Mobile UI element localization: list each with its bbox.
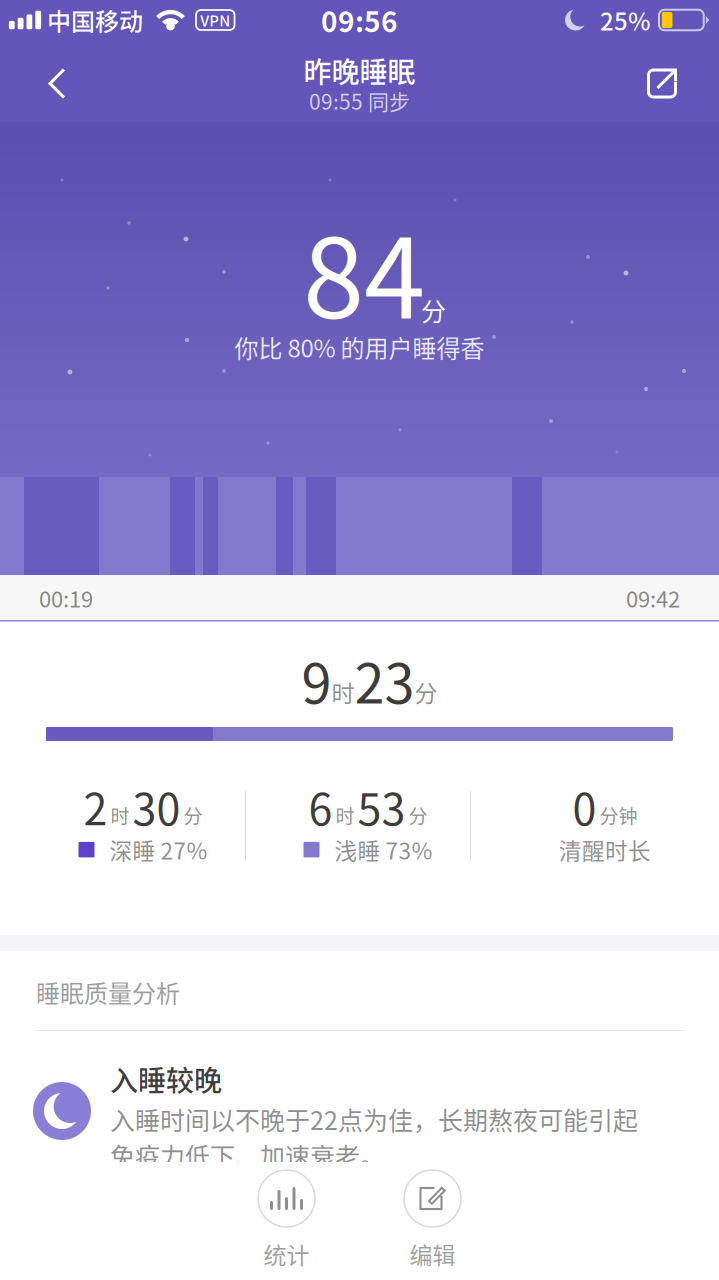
staticText: 时 — [331, 675, 354, 709]
staticText: 时 — [110, 802, 129, 829]
staticText: 分钟 — [599, 802, 637, 829]
button[interactable]: Back — [23, 51, 91, 115]
staticText: 9 — [301, 641, 331, 719]
staticText: 时 — [335, 802, 354, 829]
staticText: 分 — [421, 292, 446, 328]
staticText: 00:19 — [39, 582, 93, 614]
staticText: 6 — [308, 775, 332, 838]
staticText: 2 — [83, 775, 107, 838]
staticText: 入睡时间以不晚于22点为佳，长期熬夜可能引起免疫力低下、加速衰老。 — [110, 1101, 638, 1173]
staticText: 53 — [357, 775, 405, 838]
staticText: 30 — [132, 775, 180, 838]
staticText: 分 — [183, 802, 202, 829]
staticText: 你比 80% 的用户睡得香 — [234, 330, 484, 364]
staticText: 昨晚睡眠 — [303, 50, 415, 91]
staticText: VPN — [200, 9, 230, 31]
staticText: 清醒时长 — [559, 833, 651, 866]
staticText: 浅睡 73% — [334, 833, 432, 866]
staticText: 分 — [414, 675, 437, 709]
staticText: 中国移动 — [47, 3, 143, 37]
button[interactable]: Share — [628, 51, 696, 115]
staticText: 深睡 27% — [109, 833, 207, 866]
staticText: 23 — [354, 641, 414, 719]
staticText: 09:56 — [321, 0, 398, 40]
staticText: 84 — [303, 191, 425, 350]
button[interactable]: 入睡较晚 — [0, 1060, 719, 1200]
button[interactable]: 统计 — [231, 1167, 341, 1272]
staticText: 编辑 — [409, 1237, 455, 1271]
staticText: 入睡较晚 — [110, 1059, 222, 1099]
staticText: 09:42 — [626, 582, 680, 614]
staticText: 09:55 同步 — [309, 85, 410, 116]
staticText: 分 — [408, 802, 427, 829]
button[interactable]: 编辑 — [377, 1167, 487, 1272]
staticText: 0 — [572, 775, 596, 838]
staticText: 睡眠质量分析 — [36, 975, 180, 1009]
staticText: 统计 — [263, 1237, 309, 1271]
staticText: 25% — [600, 3, 651, 37]
